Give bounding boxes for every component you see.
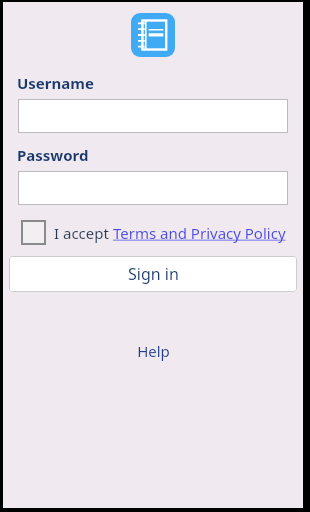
staticText: Help — [137, 341, 170, 361]
staticText: Password — [17, 145, 89, 165]
staticText: I accept — [54, 223, 113, 243]
other: App icon — [131, 13, 175, 57]
staticText: Username — [17, 73, 94, 93]
button[interactable]: Help — [127, 339, 180, 363]
button[interactable] — [18, 171, 288, 205]
button[interactable]: I accept — [21, 220, 303, 245]
button[interactable] — [18, 99, 288, 133]
button[interactable]: Sign in — [9, 256, 297, 292]
staticText: Sign in — [128, 263, 179, 285]
button[interactable]: Terms and Privacy Policy — [113, 223, 286, 243]
